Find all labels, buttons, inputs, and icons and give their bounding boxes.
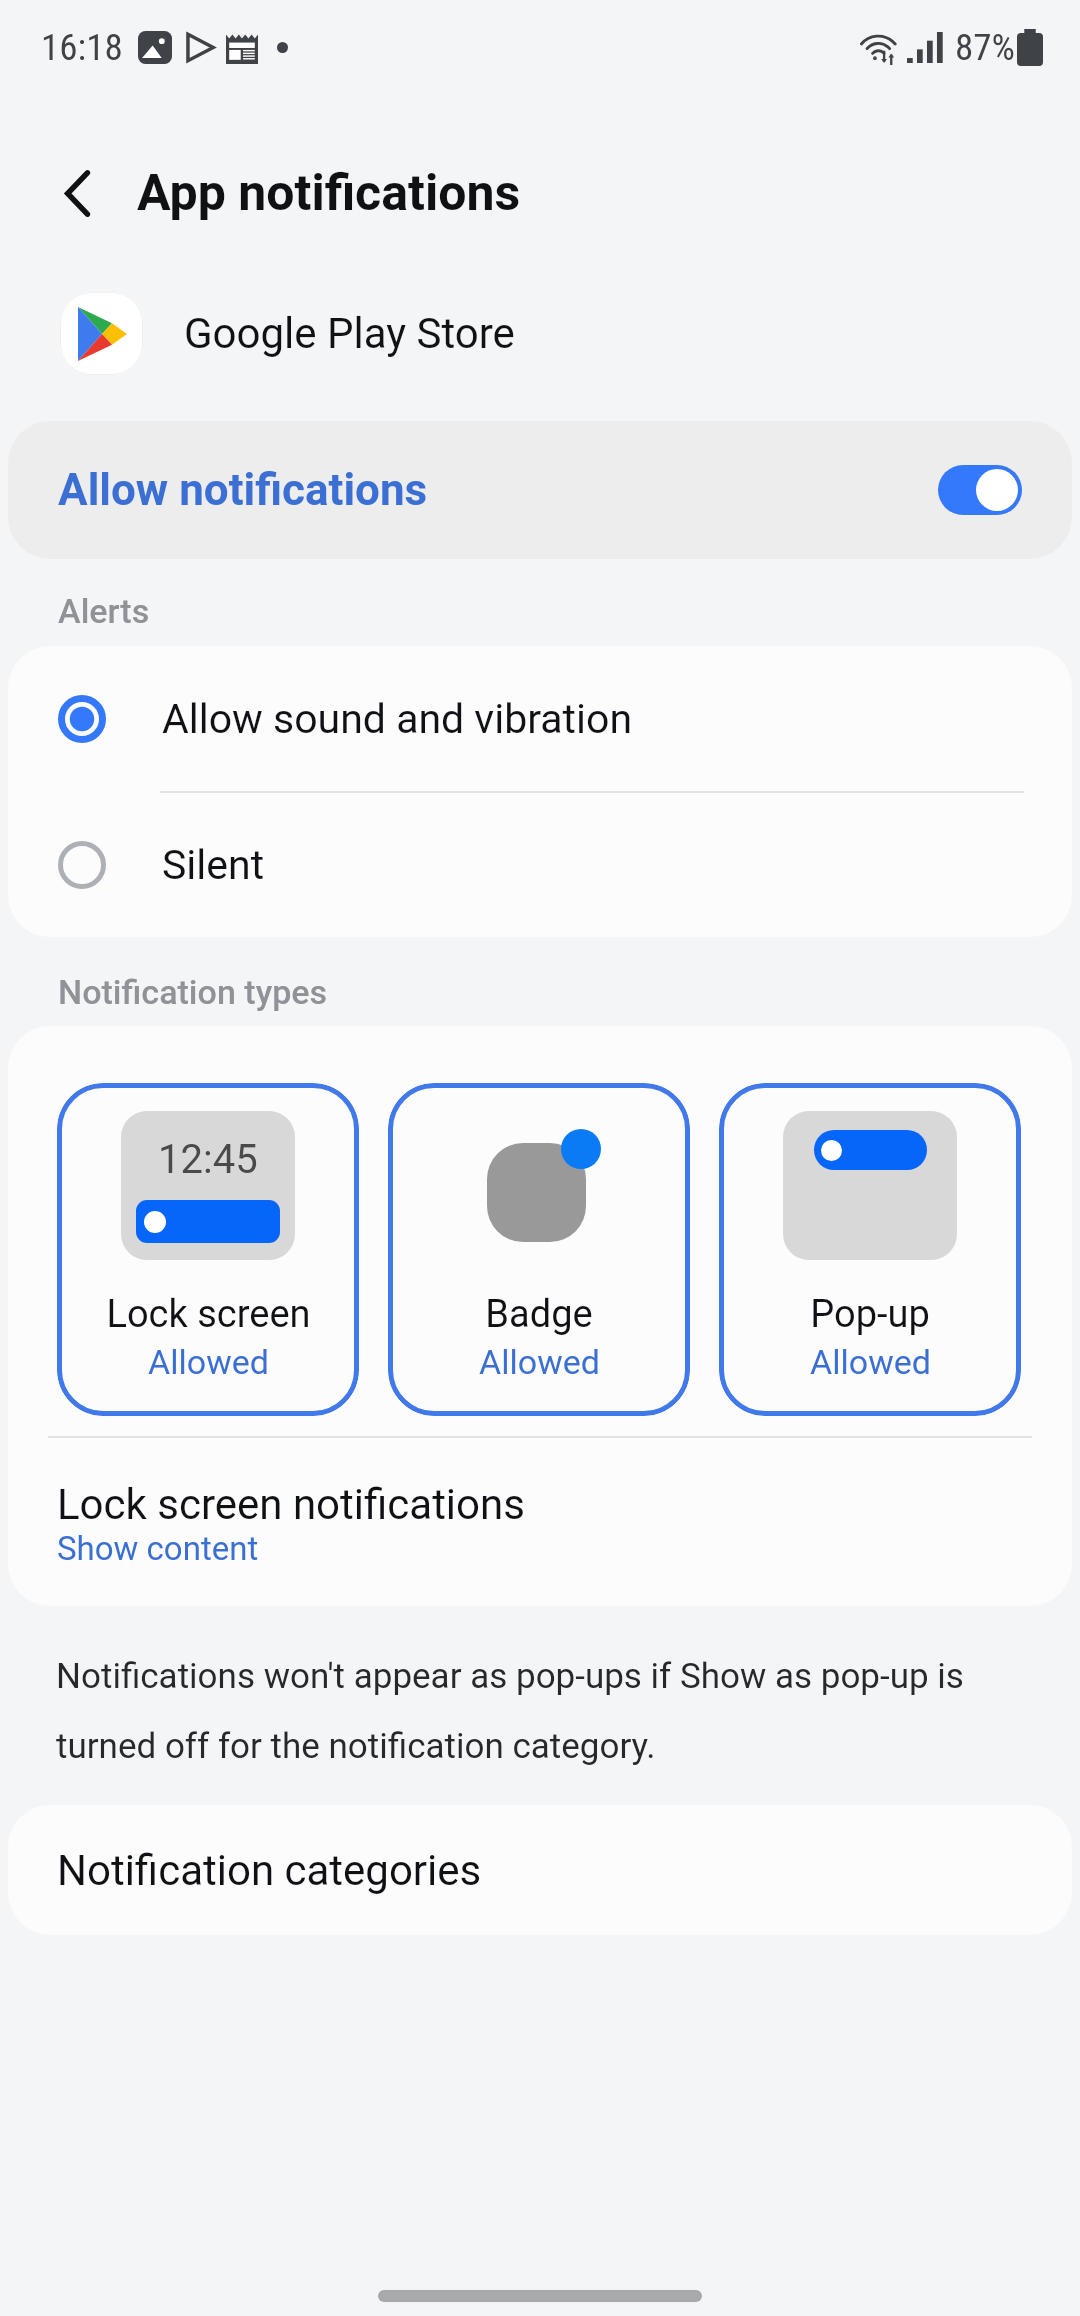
staticText: Badge bbox=[485, 1292, 593, 1337]
staticText: Allow sound and vibration bbox=[162, 695, 633, 743]
button[interactable]: Pop-up bbox=[719, 1083, 1021, 1416]
button[interactable]: Lock screen notifications bbox=[8, 1438, 1072, 1606]
staticText: Notification types bbox=[58, 972, 328, 1012]
staticText: Show content bbox=[57, 1529, 259, 1568]
staticText: Allowed bbox=[810, 1342, 931, 1382]
staticText: Lock screen bbox=[106, 1292, 311, 1337]
button[interactable]: Back bbox=[41, 157, 113, 229]
staticText: Pop-up bbox=[810, 1292, 930, 1337]
button[interactable]: Badge bbox=[388, 1083, 690, 1416]
staticText: Notifications won't appear as pop-ups if… bbox=[56, 1656, 1006, 1767]
button[interactable]: Silent bbox=[8, 793, 1072, 937]
staticText: Lock screen notifications bbox=[57, 1480, 525, 1529]
staticText: 16:18 bbox=[41, 26, 123, 69]
button[interactable]: Notification categories bbox=[8, 1805, 1072, 1935]
staticText: Notification categories bbox=[57, 1846, 482, 1895]
staticText: Allowed bbox=[479, 1342, 600, 1382]
button[interactable]: Allow notifications bbox=[8, 421, 1072, 559]
staticText: Silent bbox=[162, 841, 265, 889]
staticText: 12:45 bbox=[158, 1136, 258, 1183]
button[interactable]: Google Play Store bbox=[0, 288, 1080, 378]
button[interactable]: 12:45 bbox=[57, 1083, 359, 1416]
staticText: Allow notifications bbox=[58, 464, 428, 516]
staticText: Allowed bbox=[148, 1342, 269, 1382]
button[interactable]: Allow sound and vibration bbox=[8, 646, 1072, 791]
staticText: App notifications bbox=[137, 164, 521, 223]
staticText: Alerts bbox=[58, 591, 150, 631]
staticText: 87% bbox=[955, 26, 1015, 69]
staticText: Google Play Store bbox=[184, 309, 515, 358]
